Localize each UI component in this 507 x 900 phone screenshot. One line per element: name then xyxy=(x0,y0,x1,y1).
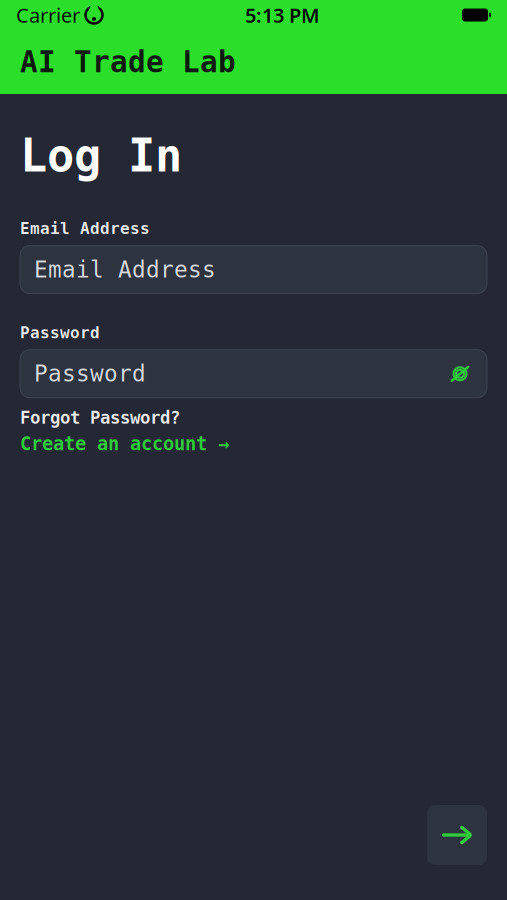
staticText: Password xyxy=(34,361,146,387)
button[interactable]: Password xyxy=(20,350,487,398)
staticText: Email Address xyxy=(20,219,150,238)
staticText: 5:13 PM xyxy=(245,2,320,28)
staticText: Carrier xyxy=(16,2,80,28)
staticText: Email Address xyxy=(34,257,216,282)
button[interactable]: Email Address xyxy=(20,246,487,294)
button[interactable]: Log In xyxy=(427,805,487,865)
staticText: AI Trade Lab xyxy=(20,45,236,79)
button[interactable]: Create an account → xyxy=(0,431,507,457)
staticText: Log In xyxy=(20,130,182,181)
staticText: Password xyxy=(20,324,100,342)
staticText: Create an account → xyxy=(20,433,229,454)
staticText: Forgot Password? xyxy=(20,408,180,428)
button[interactable]: Forgot Password? xyxy=(0,405,507,431)
